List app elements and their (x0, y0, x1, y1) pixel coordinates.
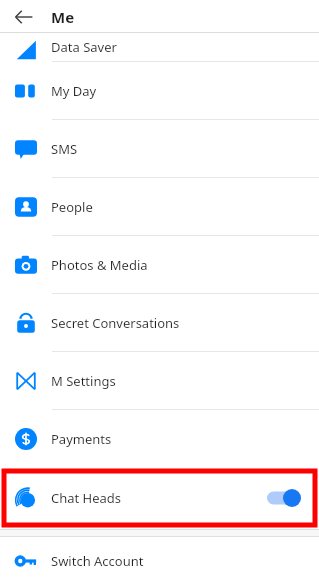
button[interactable]: Payments (0, 410, 319, 467)
staticText: Photos & Media (51, 256, 148, 274)
button[interactable]: Back (10, 3, 38, 31)
button[interactable]: Data Saver (0, 33, 319, 61)
staticText: Data Saver (51, 38, 117, 56)
button[interactable]: My Day (0, 62, 319, 119)
button[interactable]: Secret Conversations (0, 294, 319, 351)
staticText: Chat Heads (51, 489, 122, 507)
staticText: Payments (51, 430, 112, 448)
button[interactable]: Chat Heads (0, 467, 319, 529)
staticText: People (51, 198, 93, 216)
button[interactable]: M Settings (0, 352, 319, 409)
staticText: M Settings (51, 372, 116, 390)
staticText: Secret Conversations (51, 314, 180, 332)
staticText: Me (51, 7, 75, 27)
button[interactable]: Photos & Media (0, 236, 319, 293)
staticText: My Day (51, 82, 97, 100)
button[interactable]: Switch Account (0, 537, 319, 584)
staticText: SMS (51, 140, 78, 158)
staticText: Switch Account (51, 552, 144, 570)
button[interactable]: People (0, 178, 319, 235)
button[interactable]: SMS (0, 120, 319, 177)
